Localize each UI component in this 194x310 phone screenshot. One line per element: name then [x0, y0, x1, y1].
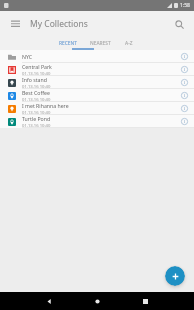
- button[interactable]: Home: [73, 292, 121, 310]
- button[interactable]: Search: [170, 15, 188, 33]
- button[interactable]: Add collection: [165, 266, 185, 286]
- button[interactable]: Turtle Pond: [0, 115, 194, 128]
- button[interactable]: Navigation drawer: [6, 15, 24, 33]
- staticText: NYC: [22, 53, 33, 60]
- staticText: NEAREST: [90, 40, 111, 47]
- button[interactable]: Best Coffee: [0, 89, 194, 102]
- button[interactable]: Info for Central Park: [177, 63, 191, 75]
- staticText: 01.13.16 10:40: [22, 110, 51, 114]
- staticText: 1:58: [180, 2, 190, 9]
- staticText: 01.13.16 10:40: [22, 97, 51, 101]
- button[interactable]: Info for NYC: [177, 50, 191, 62]
- button[interactable]: Central Park: [0, 63, 194, 76]
- staticText: Turtle Pond: [22, 115, 51, 122]
- button[interactable]: Info for Turtle Pond: [177, 115, 191, 127]
- staticText: I met Rihanna here: [22, 102, 69, 109]
- button[interactable]: Info for I met Rihanna here: [177, 102, 191, 114]
- button[interactable]: NYC: [0, 50, 194, 63]
- button[interactable]: Info for Best Coffee: [177, 89, 191, 101]
- staticText: Best Coffee: [22, 89, 50, 96]
- staticText: RECENT: [59, 40, 77, 47]
- staticText: Central Park: [22, 63, 52, 70]
- button[interactable]: NEAREST: [84, 36, 116, 50]
- staticText: My Collections: [30, 18, 88, 30]
- staticText: Info stand: [22, 76, 47, 83]
- button[interactable]: Back: [25, 292, 73, 310]
- staticText: 01.13.16 10:40: [22, 123, 51, 127]
- button[interactable]: I met Rihanna here: [0, 102, 194, 115]
- button[interactable]: RECENT: [52, 36, 84, 50]
- button[interactable]: Info stand: [0, 76, 194, 89]
- staticText: 01.13.16 10:40: [22, 71, 51, 75]
- button[interactable]: A-Z: [116, 36, 142, 50]
- button[interactable]: Recents: [121, 292, 169, 310]
- button[interactable]: Info for Info stand: [177, 76, 191, 88]
- staticText: A-Z: [125, 40, 133, 47]
- staticText: 01.13.16 10:40: [22, 84, 51, 88]
